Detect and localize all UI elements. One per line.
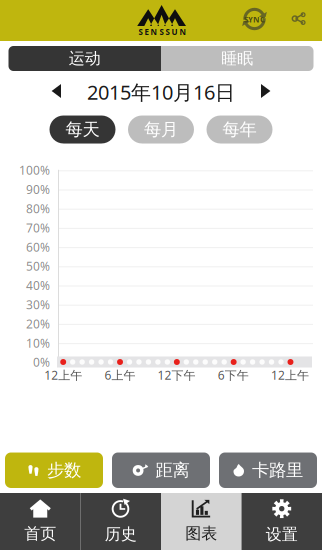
staticText: 30% (26, 297, 50, 312)
staticText: 运动 (69, 49, 101, 68)
staticText: 70% (26, 220, 50, 236)
button[interactable]: 图表 (161, 493, 241, 550)
button[interactable]: 每天 (49, 115, 115, 143)
staticText: 60% (26, 239, 50, 255)
staticText: 卡路里 (252, 460, 303, 481)
button[interactable]: 每月 (128, 115, 194, 143)
button[interactable]: 历史 (80, 493, 161, 550)
staticText: 每天 (65, 119, 99, 140)
button[interactable]: 首页 (0, 493, 80, 550)
staticText: 50% (26, 258, 50, 274)
staticText: 每月 (144, 119, 178, 140)
staticText: 设置 (266, 524, 298, 544)
staticText: 6上午 (104, 367, 135, 383)
staticText: 步数 (47, 460, 81, 481)
button[interactable]: Sync (237, 2, 271, 36)
staticText: 距离 (155, 460, 189, 481)
staticText: 12上午 (271, 367, 309, 383)
staticText: 睡眠 (221, 49, 253, 68)
button[interactable]: 步数 (5, 452, 103, 488)
staticText: 图表 (185, 524, 217, 543)
staticText: 20% (26, 316, 50, 332)
button[interactable]: 运动 (8, 46, 161, 71)
staticText: 0% (33, 354, 50, 370)
staticText: 10% (26, 335, 50, 351)
staticText: 2015年10月16日 (87, 79, 235, 105)
staticText: 12下午 (158, 367, 196, 383)
button[interactable]: Share (284, 2, 314, 36)
staticText: 100% (19, 162, 50, 178)
button[interactable]: 距离 (112, 452, 210, 488)
button[interactable]: 睡眠 (161, 46, 313, 71)
staticText: 首页 (24, 524, 56, 544)
button[interactable]: 设置 (241, 493, 322, 550)
staticText: SENSSUN (138, 27, 186, 37)
staticText: 90% (26, 181, 50, 197)
staticText: SYNC (244, 14, 265, 25)
staticText: 40% (26, 277, 50, 293)
staticText: 历史 (105, 524, 137, 544)
staticText: 每年 (222, 119, 256, 140)
staticText: 6下午 (218, 367, 249, 383)
button[interactable]: 每年 (206, 115, 272, 143)
button[interactable]: 卡路里 (219, 452, 317, 488)
staticText: 12上午 (44, 367, 82, 383)
button[interactable]: Previous day (42, 74, 71, 108)
button[interactable]: Next day (251, 74, 280, 108)
staticText: 80% (26, 201, 50, 216)
